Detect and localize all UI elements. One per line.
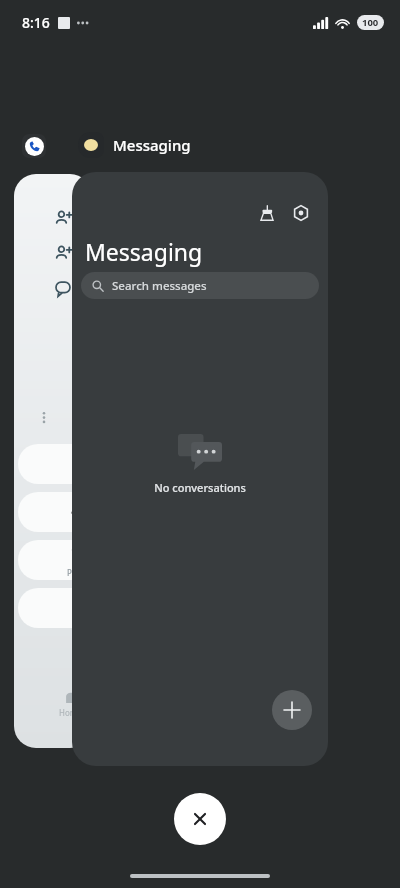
- button[interactable]: 1: [18, 444, 92, 484]
- button[interactable]: *: [18, 588, 92, 628]
- button[interactable]: Close all: [174, 793, 226, 845]
- staticText: Messaging: [113, 135, 191, 155]
- button[interactable]: Messaging: [78, 132, 191, 158]
- button[interactable]: Clean up: [72, 172, 328, 766]
- staticText: 1: [71, 447, 84, 476]
- button[interactable]: Clean up: [254, 200, 280, 226]
- staticText: 8:16: [22, 13, 50, 32]
- button[interactable]: Search messages: [81, 272, 319, 299]
- staticText: Search messages: [112, 278, 207, 294]
- button[interactable]: Settings: [288, 200, 314, 226]
- button[interactable]: Phone: [22, 134, 46, 158]
- staticText: 100: [362, 16, 379, 29]
- staticText: No conversations: [154, 480, 246, 495]
- button[interactable]: New conversation: [272, 690, 312, 730]
- button[interactable]: 7: [18, 540, 92, 580]
- staticText: 4: [71, 495, 84, 524]
- staticText: PQRS: [67, 567, 88, 578]
- staticText: Home: [59, 707, 82, 718]
- staticText: Messaging: [85, 236, 203, 267]
- staticText: 7: [71, 543, 84, 572]
- button[interactable]: 4: [18, 492, 92, 532]
- button[interactable]: 1: [14, 174, 92, 748]
